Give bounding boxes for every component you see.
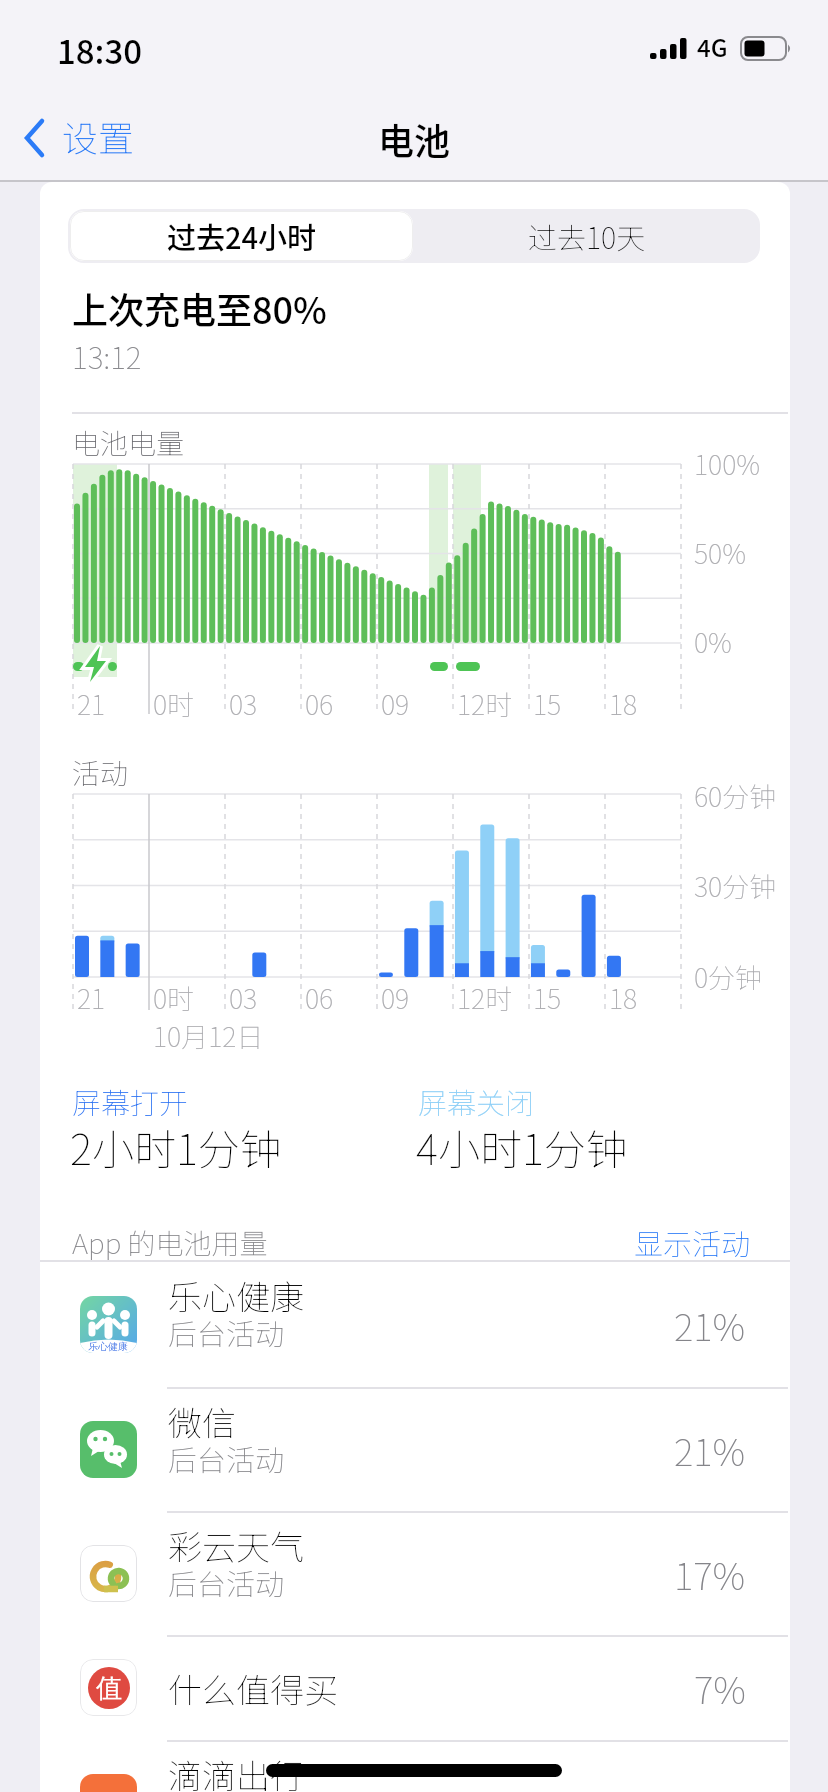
staticText: 后台活动	[168, 1561, 285, 1603]
button[interactable]: 微信	[40, 1388, 790, 1512]
staticText: 0分钟	[694, 957, 763, 996]
staticText: 09	[381, 684, 410, 723]
staticText: 0%	[694, 622, 732, 661]
staticText: 18	[609, 684, 638, 723]
staticText: 09	[381, 978, 410, 1017]
staticText: 滴滴出行	[168, 1750, 304, 1792]
button[interactable]: 值	[40, 1636, 790, 1740]
staticText: 显示活动	[634, 1221, 751, 1261]
staticText: 21	[77, 684, 106, 723]
staticText: 03	[229, 684, 258, 723]
staticText: 过去10天	[528, 215, 646, 257]
staticText: 15	[533, 684, 562, 723]
staticText: 4小时1分钟	[416, 1116, 628, 1177]
staticText: 06	[305, 978, 334, 1017]
button[interactable]	[70, 211, 413, 261]
staticText: 06	[305, 684, 334, 723]
staticText: 0时	[153, 684, 195, 723]
staticText: 15	[533, 978, 562, 1017]
button[interactable]: 乐心健康	[40, 1261, 790, 1388]
staticText: 后台活动	[168, 1790, 285, 1792]
staticText: 4G	[697, 29, 728, 64]
button[interactable]: 滴滴出行	[40, 1741, 790, 1792]
staticText: 60分钟	[694, 776, 777, 815]
button[interactable]: 设置	[20, 108, 150, 170]
staticText: 18	[609, 978, 638, 1017]
staticText: 7%	[694, 1661, 746, 1715]
staticText: 值	[96, 1672, 122, 1705]
staticText: 12时	[457, 684, 513, 723]
staticText: 屏幕打开	[72, 1080, 189, 1122]
staticText: 后台活动	[168, 1437, 285, 1479]
staticText: 什么值得买	[168, 1664, 338, 1713]
staticText: 过去24小时	[167, 215, 317, 257]
button[interactable]: 显示活动	[600, 1221, 751, 1261]
staticText: 电池	[378, 113, 451, 165]
button[interactable]: 彩云天气	[40, 1512, 790, 1636]
button[interactable]: 过去10天	[414, 211, 760, 261]
staticText: 100%	[694, 444, 760, 483]
staticText: 设置	[62, 110, 135, 162]
staticText: 21%	[674, 1298, 746, 1352]
staticText: 13:12	[72, 334, 142, 377]
staticText: 21	[77, 978, 106, 1017]
staticText: 17%	[674, 1547, 746, 1601]
staticText: 上次充电至80%	[72, 282, 327, 334]
staticText: 0时	[153, 978, 195, 1017]
staticText: 活动	[72, 752, 129, 793]
staticText: 彩云天气	[168, 1521, 304, 1570]
staticText: 18:30	[57, 26, 143, 66]
staticText: 12时	[457, 978, 513, 1017]
staticText: App 的电池用量	[72, 1222, 268, 1263]
staticText: 21%	[674, 1423, 746, 1477]
staticText: 2小时1分钟	[70, 1116, 282, 1177]
staticText: 乐心健康	[88, 1340, 128, 1353]
staticText: 30分钟	[694, 866, 777, 905]
staticText: 03	[229, 978, 258, 1017]
staticText: 10月12日	[153, 1016, 264, 1055]
staticText: 电池电量	[72, 422, 185, 463]
staticText: 后台活动	[168, 1311, 285, 1353]
staticText: 50%	[694, 533, 746, 572]
staticText: 微信	[168, 1397, 236, 1446]
staticText: 屏幕关闭	[418, 1080, 535, 1122]
staticText: 乐心健康	[168, 1271, 304, 1320]
